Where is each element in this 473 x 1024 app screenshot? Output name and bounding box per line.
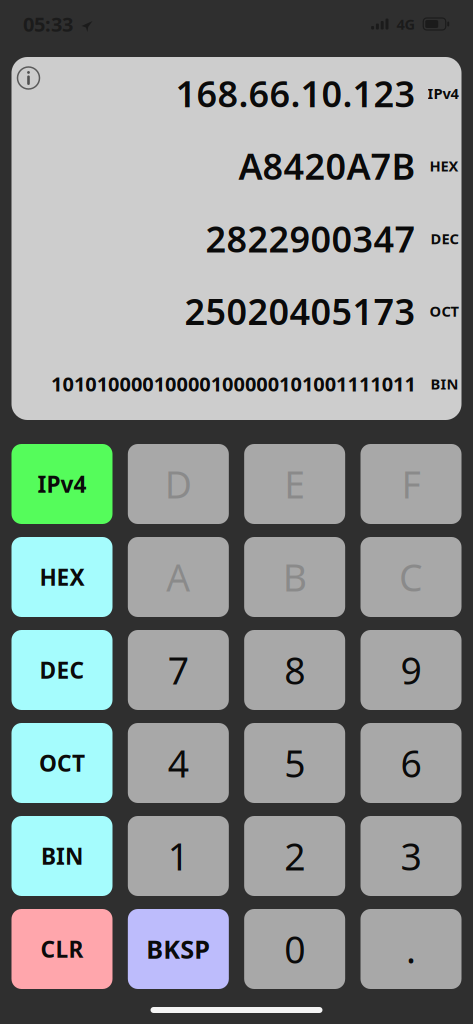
button[interactable]: A (128, 537, 229, 617)
staticText: 0 (284, 924, 305, 974)
button[interactable]: 5 (244, 723, 345, 803)
staticText: 4 (168, 738, 189, 788)
button[interactable]: C (360, 537, 461, 617)
staticText: E (284, 459, 305, 509)
button[interactable]: 8 (244, 630, 345, 710)
staticText: A8420A7B (238, 142, 415, 190)
staticText: 1 (168, 831, 189, 881)
staticText: DEC (430, 229, 458, 248)
staticText: 6 (400, 738, 421, 788)
button[interactable]: . (360, 909, 461, 989)
button[interactable]: B (244, 537, 345, 617)
staticText: DEC (39, 655, 84, 685)
button[interactable]: D (128, 444, 229, 524)
button[interactable]: 3 (360, 816, 461, 896)
staticText: A (166, 552, 190, 602)
staticText: . (406, 924, 416, 974)
button[interactable]: F (360, 444, 461, 524)
button[interactable]: OCT (11, 723, 112, 803)
staticText: 05:33 (23, 11, 73, 37)
staticText: IPv4 (427, 84, 458, 103)
button[interactable]: 2 (244, 816, 345, 896)
staticText: BKSP (146, 932, 210, 966)
staticText: F (401, 459, 420, 509)
button[interactable]: 7 (128, 630, 229, 710)
button[interactable]: 1 (128, 816, 229, 896)
staticText: 25020405173 (184, 287, 415, 335)
staticText: C (399, 552, 423, 602)
staticText: IPv4 (37, 469, 86, 499)
button[interactable]: 4 (128, 723, 229, 803)
staticText: 2 (284, 831, 305, 881)
button[interactable]: IPv4 (11, 444, 112, 524)
staticText: D (165, 459, 192, 509)
staticText: 8 (284, 645, 305, 695)
staticText: 4G (396, 14, 415, 34)
staticText: OCT (39, 748, 85, 778)
staticText: 9 (400, 645, 421, 695)
staticText: OCT (429, 301, 458, 321)
staticText: CLR (40, 934, 83, 964)
staticText: 10101000010000100000101001111011 (51, 370, 415, 397)
button[interactable]: 9 (360, 630, 461, 710)
button[interactable]: BKSP (128, 909, 229, 989)
staticText: 3 (400, 831, 421, 881)
button[interactable]: 0 (244, 909, 345, 989)
staticText: B (283, 552, 307, 602)
staticText: HEX (429, 156, 458, 176)
staticText: 168.66.10.123 (175, 69, 415, 117)
button[interactable]: Info (15, 65, 41, 91)
staticText: BIN (430, 374, 458, 393)
staticText: 2822900347 (205, 215, 415, 262)
staticText: BIN (41, 841, 83, 871)
staticText: 7 (168, 645, 189, 695)
button[interactable]: DEC (11, 630, 112, 710)
button[interactable]: E (244, 444, 345, 524)
button[interactable]: CLR (11, 909, 112, 989)
button[interactable]: HEX (11, 537, 112, 617)
staticText: 5 (284, 738, 305, 788)
button[interactable]: BIN (11, 816, 112, 896)
staticText: HEX (39, 562, 84, 592)
button[interactable]: 6 (360, 723, 461, 803)
